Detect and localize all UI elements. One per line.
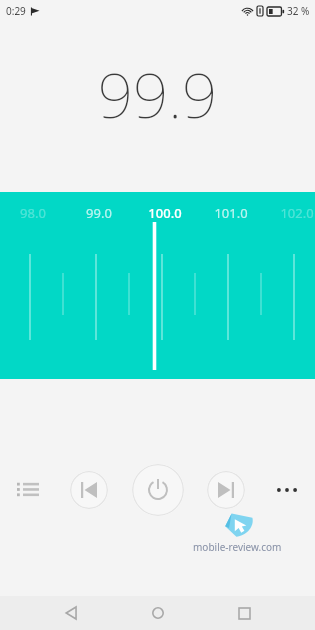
button[interactable]: Back	[56, 598, 86, 628]
button[interactable]: 98.0	[0, 192, 315, 379]
staticText: 99.0	[69, 204, 129, 222]
staticText: 100.0	[135, 204, 195, 222]
staticText: 99.9	[0, 52, 315, 136]
staticText: mobile-review.com	[193, 540, 282, 554]
button[interactable]: Power	[132, 464, 184, 516]
button[interactable]: Next station	[207, 471, 245, 509]
button[interactable]: More options	[271, 474, 303, 506]
staticText: 0:29	[6, 4, 26, 18]
button[interactable]: Recent apps	[229, 598, 259, 628]
staticText: 32 %	[287, 4, 310, 18]
button[interactable]: Station list	[12, 474, 44, 506]
button[interactable]: Home	[143, 598, 173, 628]
staticText: 102.0	[267, 204, 315, 222]
button[interactable]: Previous station	[70, 471, 108, 509]
staticText: 98.0	[3, 204, 63, 222]
staticText: 101.0	[201, 204, 261, 222]
